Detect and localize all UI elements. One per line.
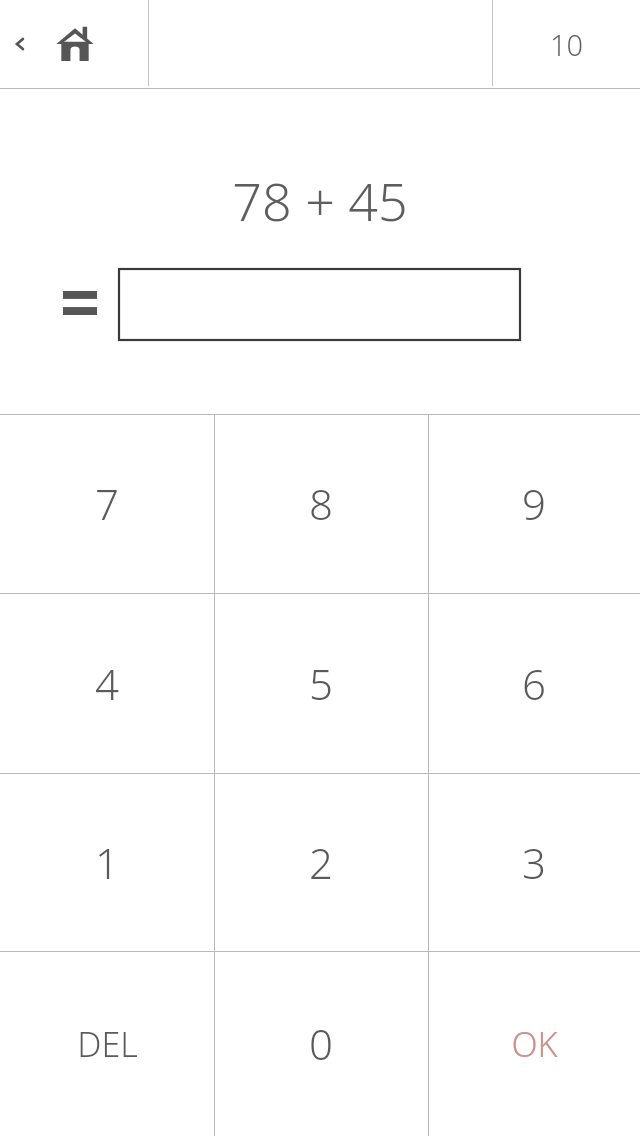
button[interactable]: 0: [214, 951, 428, 1136]
staticText: 5: [309, 655, 333, 712]
staticText: 8: [309, 475, 333, 532]
button[interactable]: 8: [214, 414, 428, 593]
button[interactable]: [119, 269, 520, 340]
button[interactable]: 9: [428, 414, 640, 593]
staticText: 9: [522, 475, 546, 532]
button[interactable]: Back: [0, 0, 40, 88]
staticText: 3: [522, 834, 546, 891]
staticText: 2: [309, 834, 333, 891]
staticText: 0: [309, 1015, 333, 1072]
staticText: 78 + 45: [232, 165, 408, 236]
button[interactable]: 4: [0, 593, 214, 773]
staticText: 1: [95, 834, 119, 891]
button[interactable]: 6: [428, 593, 640, 773]
staticText: 4: [95, 655, 119, 712]
button[interactable]: DEL: [0, 951, 214, 1136]
staticText: OK: [511, 1021, 558, 1067]
button[interactable]: 7: [0, 414, 214, 593]
button[interactable]: 5: [214, 593, 428, 773]
button[interactable]: 10: [493, 0, 640, 88]
button[interactable]: Home: [40, 0, 110, 88]
button[interactable]: 1: [0, 773, 214, 951]
button[interactable]: 2: [214, 773, 428, 951]
staticText: 6: [522, 655, 546, 712]
staticText: 7: [95, 475, 119, 532]
button[interactable]: OK: [428, 951, 640, 1136]
staticText: DEL: [77, 1021, 138, 1067]
button[interactable]: 3: [428, 773, 640, 951]
staticText: 10: [550, 25, 584, 64]
